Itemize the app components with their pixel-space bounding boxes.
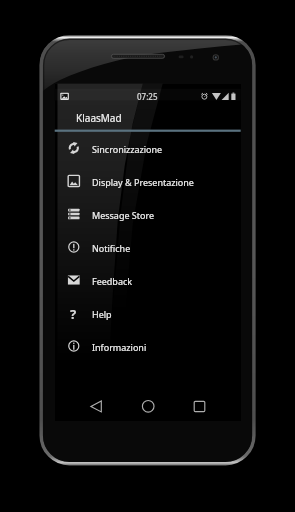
button[interactable]: Home: [133, 393, 163, 423]
staticText: ?: [70, 305, 77, 323]
staticText: Display & Presentazione: [92, 176, 194, 188]
staticText: Message Store: [92, 209, 155, 221]
staticText: Sincronizzazione: [92, 143, 163, 155]
button[interactable]: Back: [82, 393, 112, 423]
button[interactable]: Sincronizzazione: [55, 132, 241, 165]
button[interactable]: Help: [55, 297, 241, 330]
button[interactable]: Notifiche: [55, 231, 241, 264]
staticText: Feedback: [92, 275, 133, 287]
staticText: Informazioni: [92, 341, 147, 353]
staticText: 07:25: [137, 91, 158, 102]
staticText: KlaasMad: [76, 111, 122, 125]
button[interactable]: Recent apps: [185, 393, 215, 423]
button[interactable]: Informazioni: [55, 330, 241, 363]
staticText: Notifiche: [92, 242, 131, 254]
button[interactable]: KlaasMad: [55, 100, 241, 129]
button[interactable]: Display & Presentazione: [55, 165, 241, 198]
staticText: Help: [92, 308, 112, 320]
button[interactable]: Feedback: [55, 264, 241, 297]
button[interactable]: Message Store: [55, 198, 241, 231]
